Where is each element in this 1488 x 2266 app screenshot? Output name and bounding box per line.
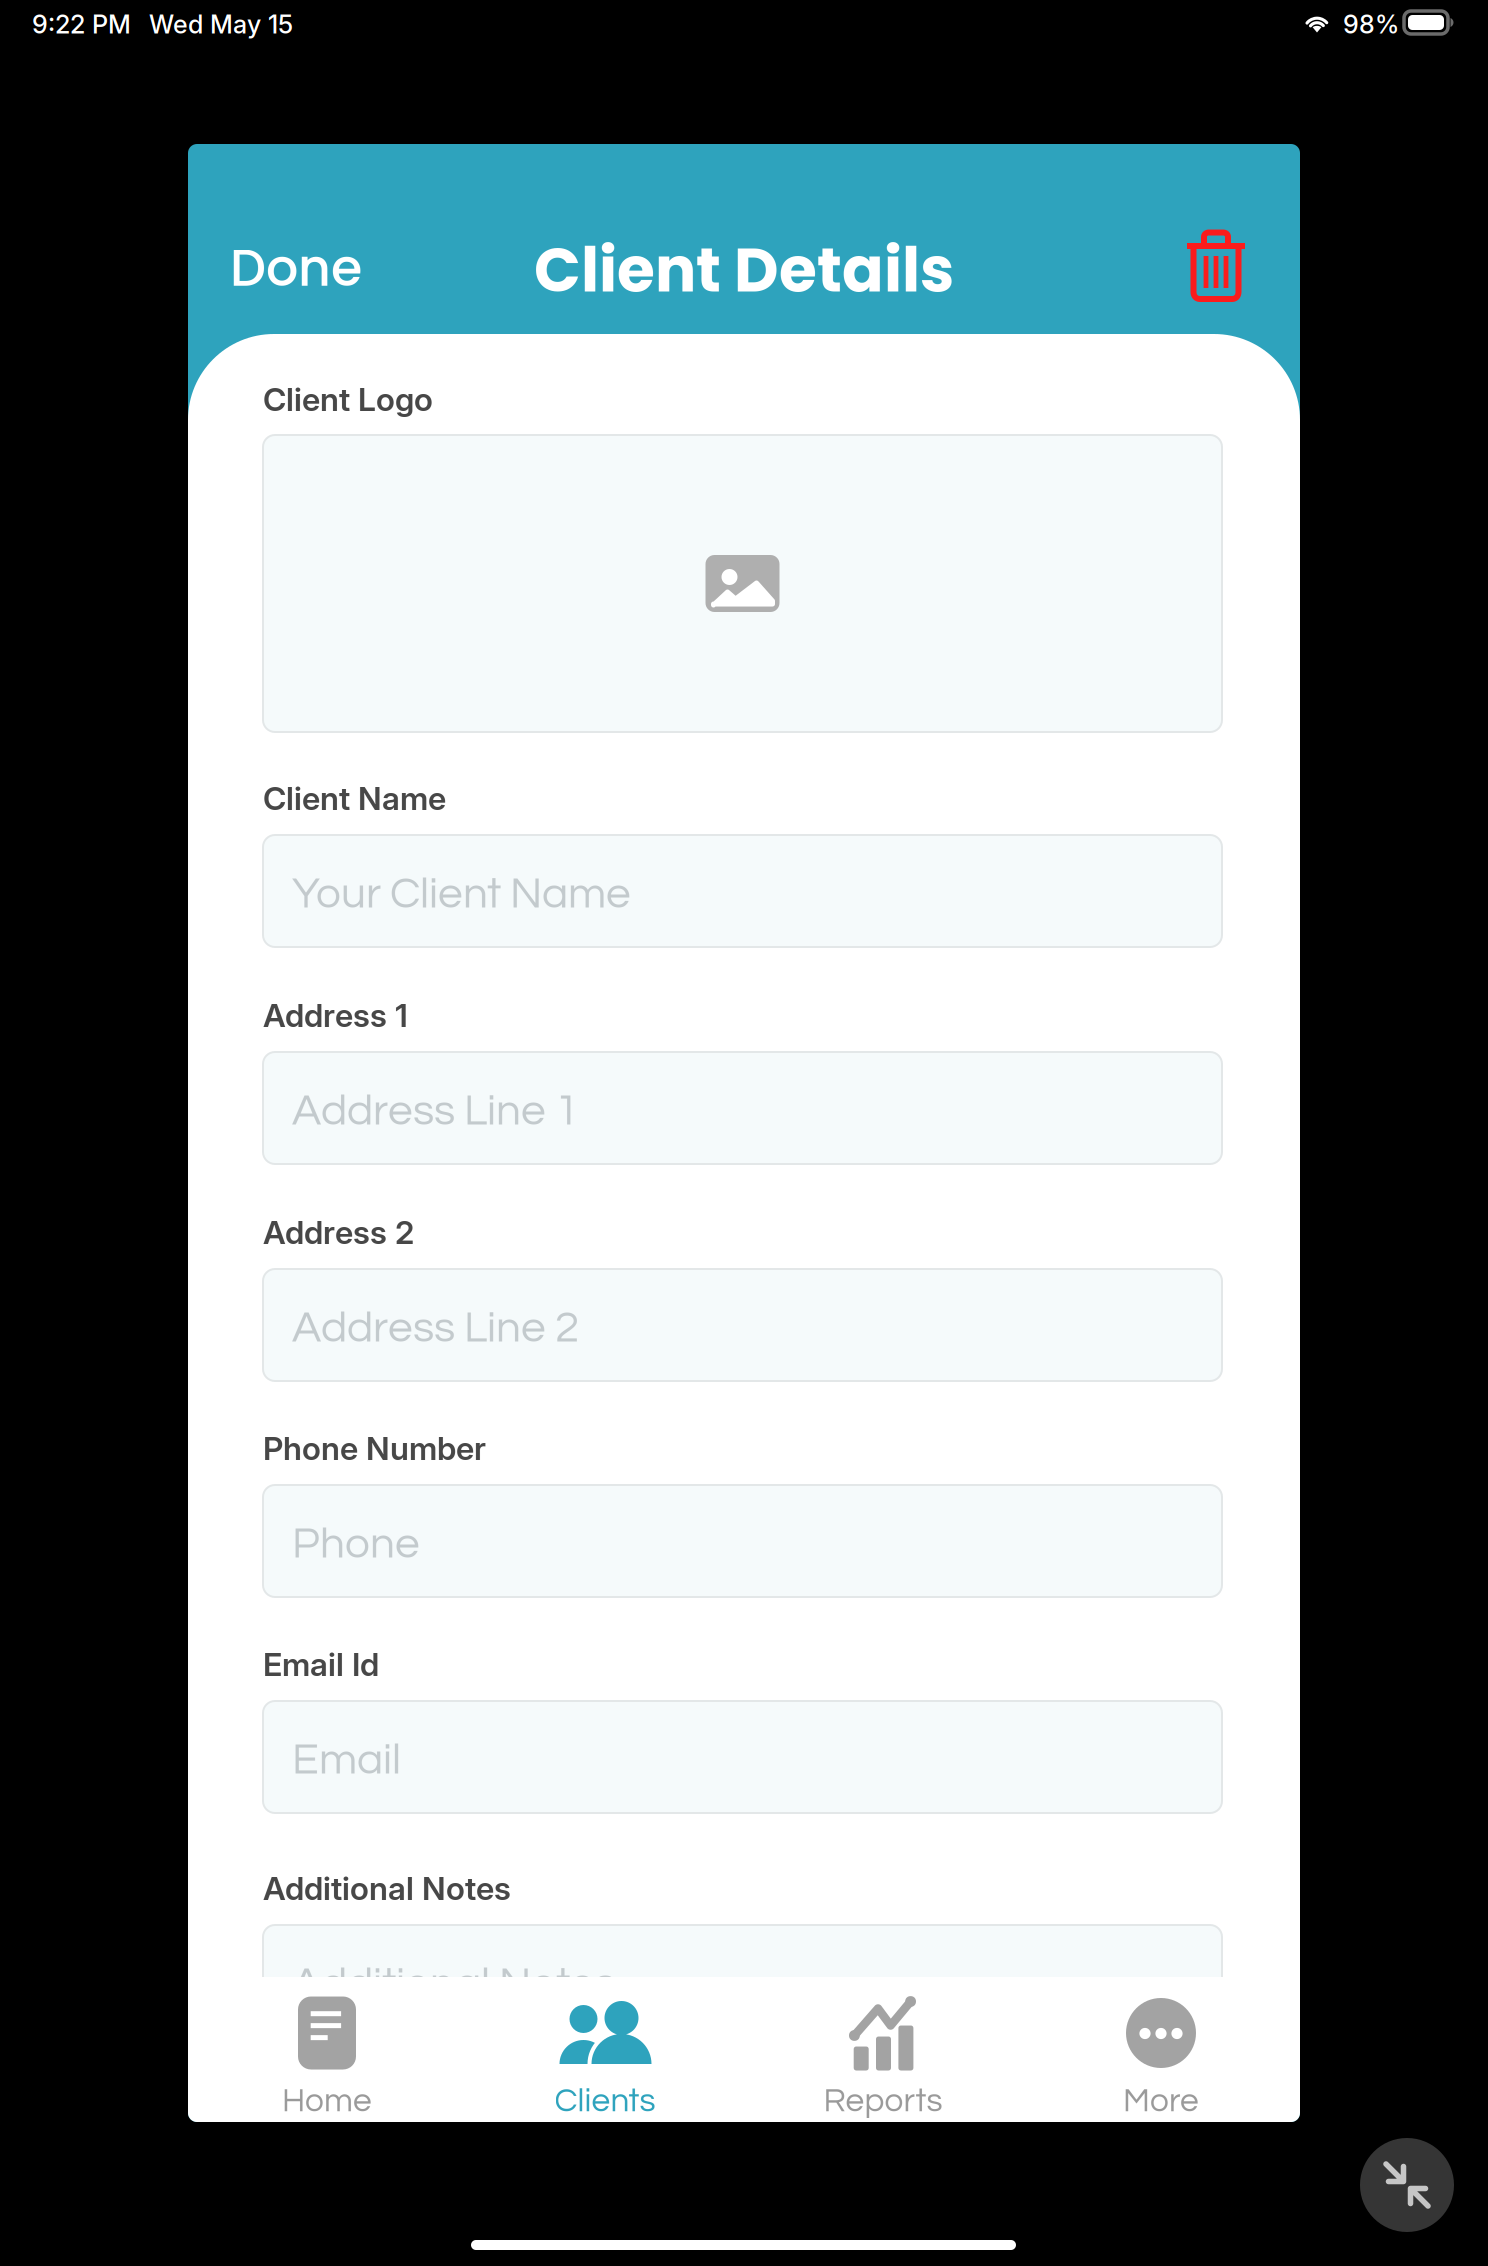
staticText: Reports: [823, 2084, 942, 2118]
button[interactable]: More: [1022, 1977, 1300, 2113]
staticText: Done: [230, 232, 362, 303]
staticText: Wed May 15: [149, 9, 293, 40]
staticText: Client Logo: [263, 380, 433, 419]
staticText: Address 2: [263, 1213, 414, 1252]
staticText: Additional Notes: [292, 1961, 616, 2007]
staticText: Home: [282, 2084, 372, 2118]
button[interactable]: Delete: [1156, 216, 1276, 316]
staticText: Email: [292, 1737, 401, 1783]
button[interactable]: Address Line 1: [263, 1052, 1222, 1164]
staticText: Phone: [292, 1521, 420, 1567]
button[interactable]: Done: [230, 230, 430, 306]
staticText: Address Line 1: [292, 1088, 579, 1134]
staticText: Address 1: [263, 996, 408, 1035]
staticText: Client Name: [263, 779, 446, 818]
button[interactable]: [263, 435, 1222, 732]
button[interactable]: Additional Notes: [263, 1925, 1222, 2037]
staticText: 98%: [1343, 9, 1399, 40]
staticText: Email Id: [263, 1645, 379, 1684]
button[interactable]: Address Line 2: [263, 1269, 1222, 1381]
staticText: More: [1123, 2084, 1199, 2118]
button[interactable]: Clients: [466, 1977, 744, 2113]
button[interactable]: Scale to fit: [1360, 2138, 1454, 2232]
button[interactable]: Home: [188, 1977, 466, 2113]
staticText: Phone Number: [263, 1429, 486, 1468]
staticText: Your Client Name: [292, 871, 631, 917]
button[interactable]: Phone: [263, 1485, 1222, 1597]
staticText: 9:22 PM: [32, 9, 131, 40]
button[interactable]: Reports: [744, 1977, 1022, 2113]
button[interactable]: Email: [263, 1701, 1222, 1813]
staticText: Additional Notes: [263, 1869, 511, 1908]
button[interactable]: Your Client Name: [263, 835, 1222, 947]
staticText: Clients: [554, 2084, 655, 2118]
staticText: Address Line 2: [292, 1305, 579, 1351]
staticText: Client Details: [534, 227, 954, 313]
